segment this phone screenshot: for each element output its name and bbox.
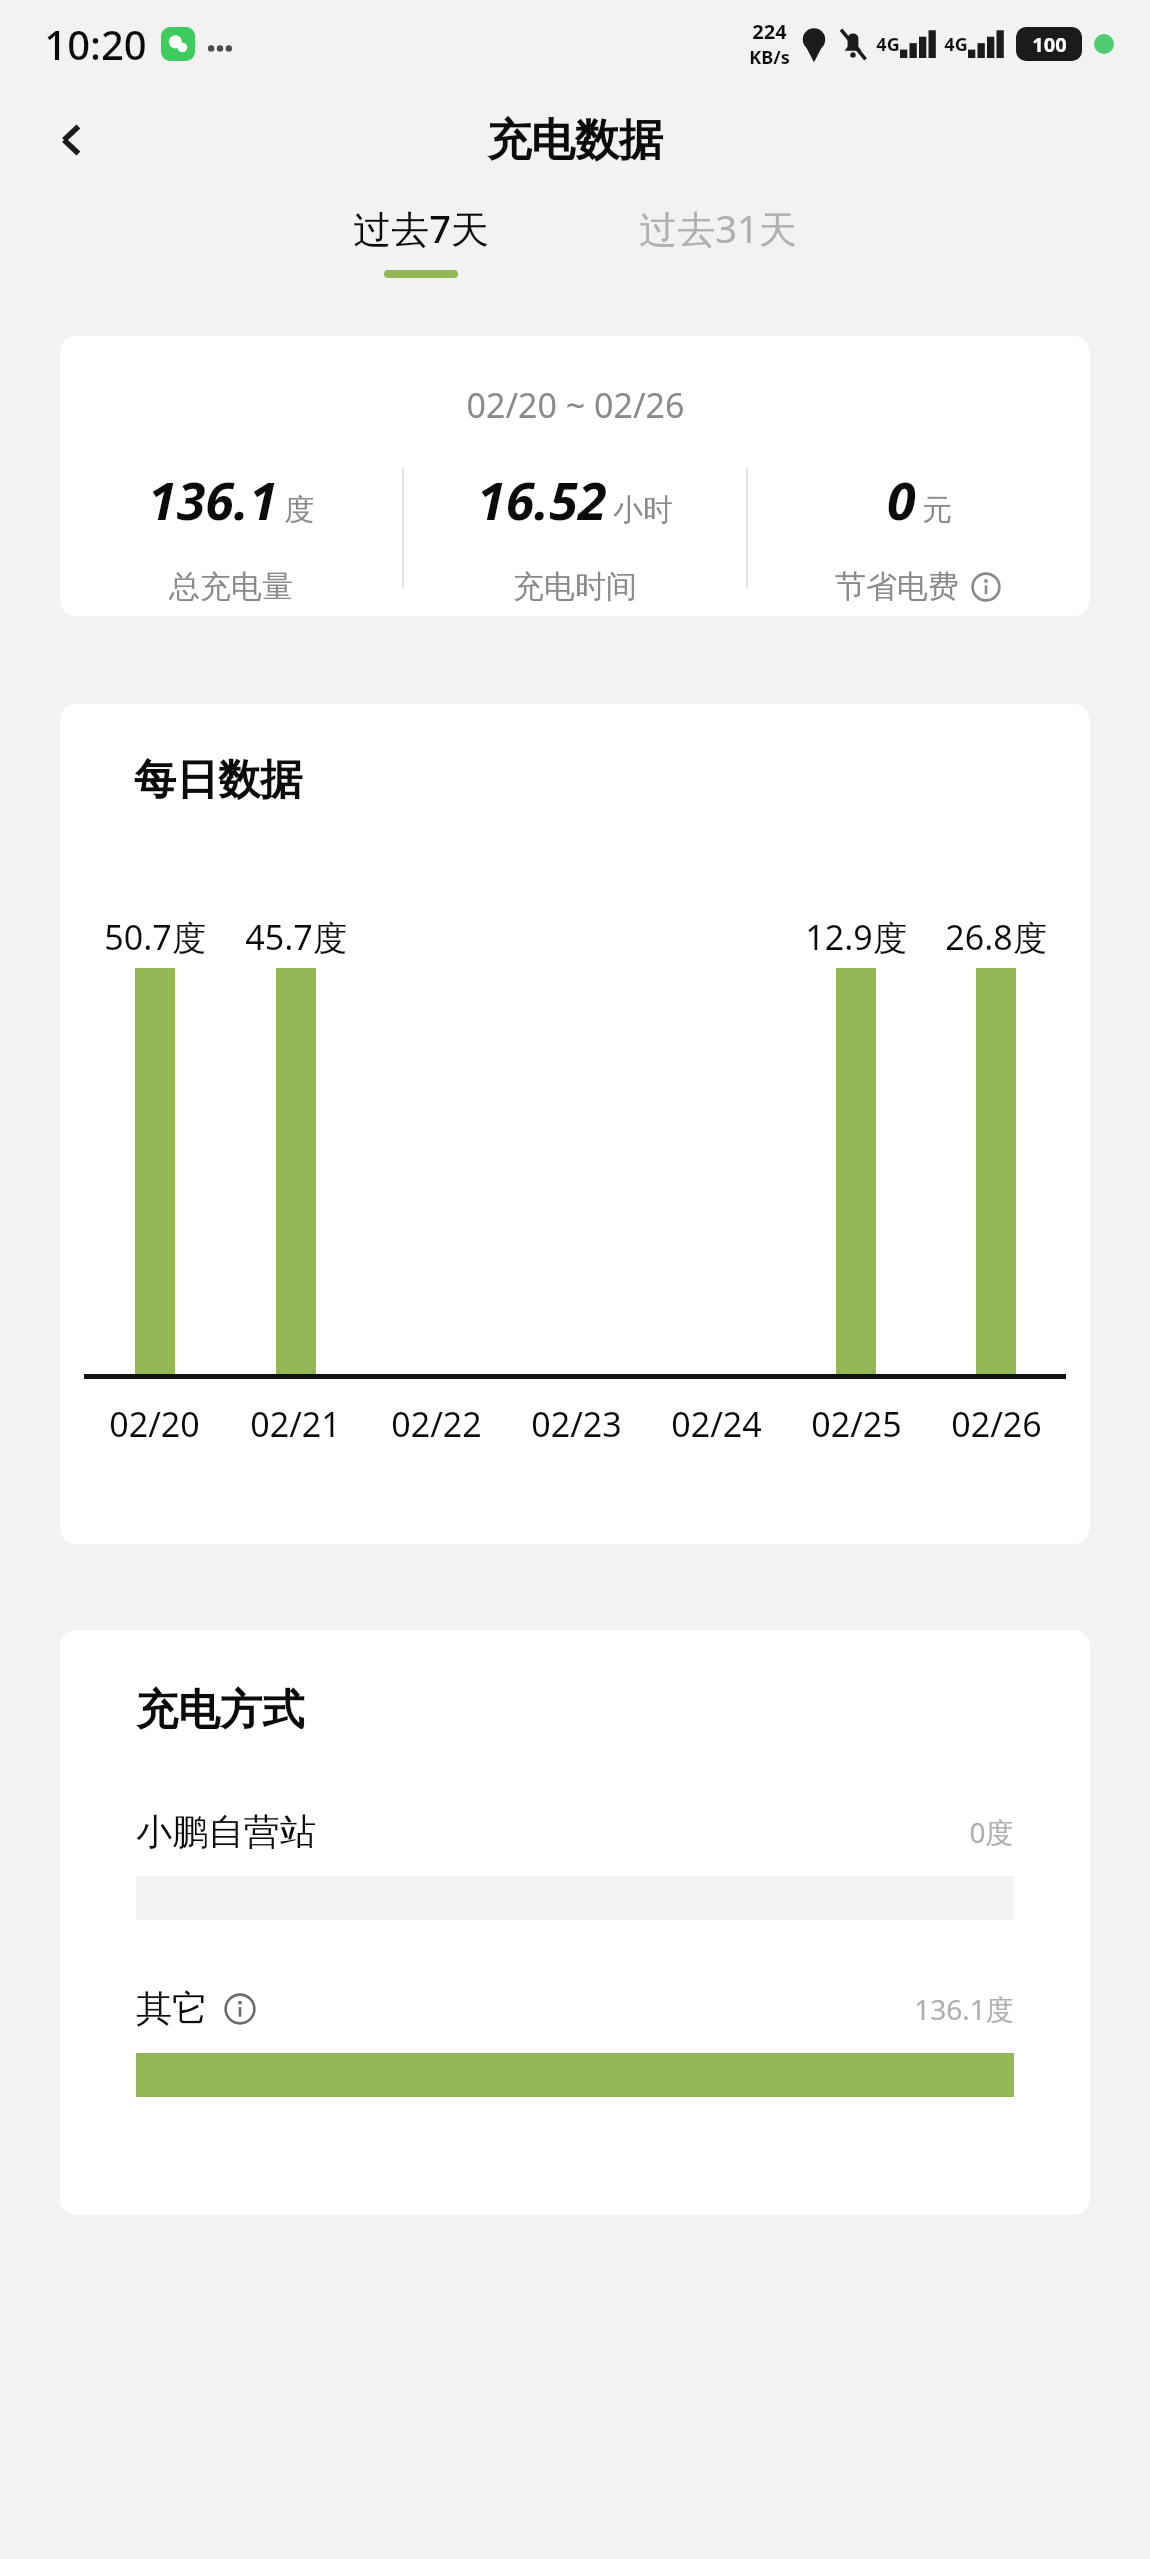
staticText: 224 <box>752 18 787 45</box>
staticText: 4G <box>876 32 900 57</box>
staticText: 0度 <box>969 1813 1014 1851</box>
staticText: KB/s <box>749 45 790 70</box>
staticText: 每日数据 <box>134 754 302 807</box>
staticText: 小时 <box>613 491 673 529</box>
staticText: 4G <box>944 32 968 57</box>
button[interactable]: 过去7天 <box>333 192 509 288</box>
staticText: 总充电量 <box>169 567 293 606</box>
staticText: 充电方式 <box>136 1684 304 1737</box>
staticText: 元 <box>922 491 952 529</box>
staticText: 节省电费 <box>835 567 959 606</box>
staticText: 小鹏自营站 <box>136 1809 316 1854</box>
staticText: 过去7天 <box>353 202 489 254</box>
staticText: 度 <box>284 491 314 529</box>
staticText: 02/23 <box>531 1401 622 1447</box>
button[interactable]: Info <box>969 570 1003 604</box>
button[interactable]: Back <box>36 104 108 176</box>
staticText: 0 <box>887 464 916 535</box>
staticText: 02/22 <box>391 1401 482 1447</box>
staticText: 136.1度 <box>914 1990 1014 2028</box>
staticText: 136.1 <box>148 464 278 535</box>
staticText: 02/21 <box>250 1401 341 1447</box>
staticText: 50.7度 <box>104 914 206 960</box>
staticText: 45.7度 <box>245 914 347 960</box>
staticText: 10:20 <box>44 17 147 71</box>
staticText: 02/25 <box>811 1401 902 1447</box>
staticText: 充电数据 <box>487 113 663 168</box>
staticText: 02/20 <box>109 1401 200 1447</box>
staticText: 02/26 <box>951 1401 1042 1447</box>
staticText: 过去31天 <box>639 202 797 254</box>
button[interactable]: 过去31天 <box>619 192 817 288</box>
staticText: 26.8度 <box>945 914 1047 960</box>
button[interactable]: Info <box>222 1991 258 2027</box>
staticText: 02/24 <box>671 1401 762 1447</box>
staticText: 02/20 ~ 02/26 <box>466 382 685 428</box>
button[interactable]: 小鹏自营站 <box>136 1809 1014 1920</box>
staticText: 充电时间 <box>513 567 637 606</box>
staticText: 其它 <box>136 1986 208 2031</box>
button[interactable]: 其它 <box>136 1986 1014 2097</box>
staticText: 12.9度 <box>805 914 907 960</box>
staticText: 16.52 <box>477 464 607 535</box>
staticText: 100 <box>1032 31 1067 58</box>
